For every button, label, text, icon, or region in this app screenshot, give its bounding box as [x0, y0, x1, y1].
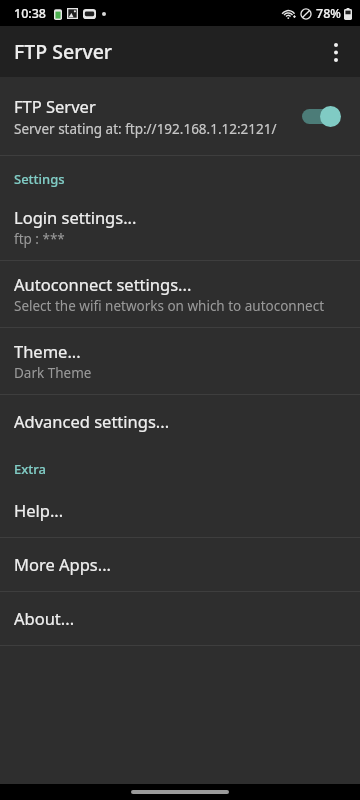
staticText: 78%: [316, 5, 341, 22]
button[interactable]: More Apps...: [0, 538, 360, 591]
staticText: Extra: [14, 460, 46, 478]
staticText: Select the wifi networks on which to aut…: [14, 297, 325, 315]
staticText: Theme...: [14, 340, 81, 362]
button[interactable]: Advanced settings...: [0, 395, 360, 448]
staticText: FTP Server: [14, 95, 96, 117]
button[interactable]: Login settings...: [0, 194, 360, 260]
staticText: Login settings...: [14, 206, 137, 228]
staticText: Autoconnect settings...: [14, 273, 192, 295]
button[interactable]: FTP Server: [0, 77, 360, 155]
staticText: Settings: [14, 170, 65, 188]
button[interactable]: Help...: [0, 484, 360, 537]
button[interactable]: More options: [312, 28, 360, 76]
staticText: Help...: [14, 499, 64, 521]
staticText: About...: [14, 607, 75, 629]
staticText: Advanced settings...: [14, 410, 170, 432]
button[interactable]: About...: [0, 592, 360, 645]
staticText: Dark Theme: [14, 364, 92, 382]
staticText: Server stating at: ftp://192.168.1.12:21…: [14, 120, 277, 138]
staticText: 10:38: [14, 5, 47, 22]
button[interactable]: Autoconnect settings...: [0, 261, 360, 327]
staticText: FTP Server: [14, 38, 113, 65]
staticText: More Apps...: [14, 553, 112, 575]
button[interactable]: Theme...: [0, 328, 360, 394]
button[interactable]: Toggle FTP Server: [300, 104, 344, 128]
staticText: ftp : ***: [14, 230, 65, 248]
